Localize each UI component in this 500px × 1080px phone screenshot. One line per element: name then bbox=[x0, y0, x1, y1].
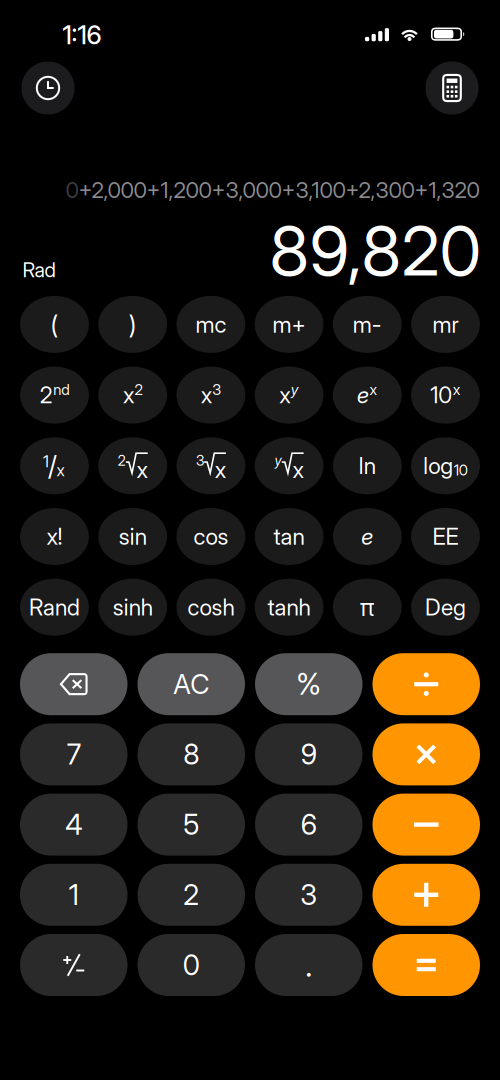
button[interactable]: 2 bbox=[137, 864, 245, 926]
button[interactable]: Plus or minus bbox=[20, 934, 127, 996]
staticText: +2,000+1,200+3,000+3,100+2,300+1,320 bbox=[78, 177, 479, 203]
button[interactable]: π bbox=[333, 579, 402, 636]
staticText: ( bbox=[50, 309, 58, 340]
button[interactable]: square root bbox=[98, 437, 167, 494]
button[interactable]: mc bbox=[176, 296, 245, 353]
button[interactable]: xy bbox=[255, 367, 323, 424]
button[interactable]: m+ bbox=[255, 296, 323, 353]
staticText: EE bbox=[432, 523, 458, 550]
button[interactable]: ex bbox=[333, 367, 402, 424]
staticText: AC bbox=[173, 668, 209, 700]
button[interactable]: 7 bbox=[20, 723, 127, 785]
staticText: 4 bbox=[65, 808, 82, 842]
button[interactable]: Divide bbox=[372, 653, 480, 715]
button[interactable]: x3 bbox=[176, 367, 245, 424]
staticText: m- bbox=[353, 311, 382, 338]
button[interactable]: mr bbox=[411, 296, 480, 353]
staticText: Deg bbox=[425, 593, 466, 621]
button[interactable]: cosh bbox=[176, 579, 245, 636]
button[interactable]: m- bbox=[333, 296, 402, 353]
staticText: 6 bbox=[301, 808, 317, 842]
staticText: nd bbox=[53, 380, 69, 398]
button[interactable]: 10x bbox=[411, 367, 480, 424]
button[interactable]: . bbox=[255, 934, 362, 996]
button[interactable]: History bbox=[21, 61, 74, 114]
staticText: 2 bbox=[134, 380, 142, 398]
button[interactable]: 0 bbox=[137, 934, 245, 996]
staticText: 1 bbox=[43, 451, 49, 471]
staticText: x bbox=[136, 456, 147, 483]
staticText: x bbox=[279, 381, 290, 409]
staticText: π bbox=[360, 593, 375, 622]
staticText: tanh bbox=[268, 593, 311, 621]
staticText: x bbox=[56, 460, 64, 480]
button[interactable]: 6 bbox=[255, 794, 362, 856]
staticText: 10 bbox=[430, 381, 452, 409]
button[interactable]: 5 bbox=[137, 794, 245, 856]
staticText: m+ bbox=[273, 311, 306, 338]
staticText: sin bbox=[119, 523, 147, 550]
staticText: . bbox=[305, 946, 312, 984]
staticText: % bbox=[296, 666, 321, 702]
button[interactable]: nth root bbox=[255, 437, 323, 494]
staticText: 1 bbox=[69, 878, 79, 912]
button[interactable]: EE bbox=[411, 508, 480, 565]
button[interactable]: Multiply bbox=[372, 723, 480, 785]
staticText: 2 bbox=[40, 381, 53, 409]
button[interactable]: tan bbox=[255, 508, 323, 565]
button[interactable]: cos bbox=[176, 508, 245, 565]
button[interactable]: Plus bbox=[372, 864, 480, 926]
button[interactable]: tanh bbox=[255, 579, 323, 636]
button[interactable]: Equals bbox=[372, 934, 480, 996]
staticText: ln bbox=[359, 452, 376, 479]
staticText: 8 bbox=[183, 737, 199, 771]
staticText: Rand bbox=[29, 593, 80, 621]
button[interactable]: 2nd bbox=[20, 367, 89, 424]
staticText: x bbox=[123, 381, 134, 409]
button[interactable]: 3 bbox=[255, 864, 362, 926]
staticText: 2 bbox=[118, 452, 126, 469]
button[interactable]: Rand bbox=[20, 579, 89, 636]
button[interactable]: one over x bbox=[20, 437, 89, 494]
button[interactable]: ( bbox=[20, 296, 89, 353]
staticText: cosh bbox=[187, 593, 234, 621]
button[interactable]: x! bbox=[20, 508, 89, 565]
staticText: x! bbox=[46, 523, 62, 550]
button[interactable]: 1 bbox=[20, 864, 127, 926]
staticText: 3 bbox=[196, 452, 204, 469]
staticText: 1:16 bbox=[62, 20, 101, 50]
staticText: / bbox=[48, 449, 57, 482]
staticText: e bbox=[357, 381, 369, 409]
button[interactable]: log10 bbox=[411, 437, 480, 494]
staticText: tan bbox=[274, 523, 305, 550]
button[interactable]: Deg bbox=[411, 579, 480, 636]
button[interactable]: sin bbox=[98, 508, 167, 565]
button[interactable]: x2 bbox=[98, 367, 167, 424]
button[interactable]: 4 bbox=[20, 794, 127, 856]
staticText: 3 bbox=[300, 878, 317, 912]
staticText: ) bbox=[129, 309, 137, 340]
staticText: 3 bbox=[212, 380, 221, 398]
staticText: 0 bbox=[65, 177, 78, 203]
staticText: sinh bbox=[113, 593, 153, 621]
button[interactable]: AC bbox=[137, 653, 245, 715]
button[interactable]: Calculator mode bbox=[425, 61, 478, 114]
button[interactable]: ln bbox=[333, 437, 402, 494]
staticText: 0 bbox=[183, 948, 200, 982]
button[interactable]: 9 bbox=[255, 723, 362, 785]
staticText: log bbox=[423, 452, 453, 479]
button[interactable]: Minus bbox=[372, 794, 480, 856]
button[interactable]: % bbox=[255, 653, 362, 715]
staticText: x bbox=[369, 380, 377, 398]
staticText: cos bbox=[193, 523, 228, 550]
staticText: 2 bbox=[183, 878, 199, 912]
button[interactable]: ) bbox=[98, 296, 167, 353]
button[interactable]: sinh bbox=[98, 579, 167, 636]
button[interactable]: Delete bbox=[20, 653, 127, 715]
button[interactable]: cube root bbox=[176, 437, 245, 494]
button[interactable]: e bbox=[333, 508, 402, 565]
staticText: x bbox=[292, 456, 303, 483]
staticText: 9 bbox=[301, 737, 317, 771]
staticText: mc bbox=[195, 311, 226, 338]
button[interactable]: 8 bbox=[137, 723, 245, 785]
